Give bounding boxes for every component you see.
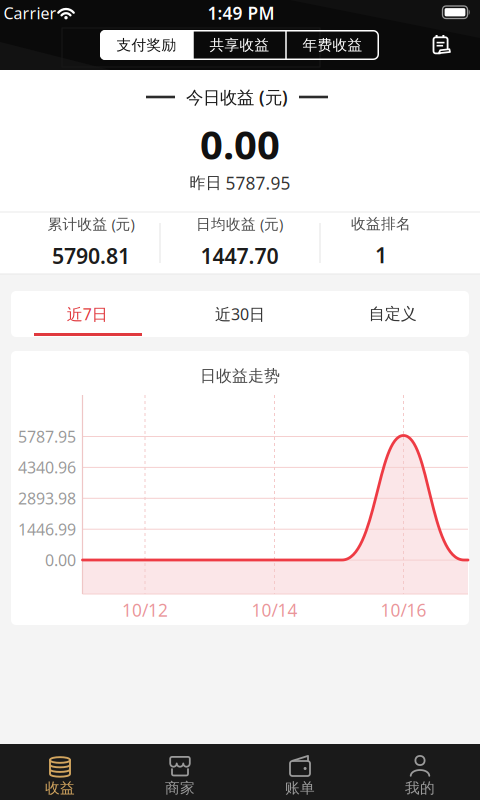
staticText: 收益排名	[351, 215, 411, 233]
button[interactable]: 我的	[360, 744, 480, 800]
staticText: Carrier	[3, 2, 56, 24]
staticText: 1446.99	[18, 519, 76, 540]
staticText: 10/12	[122, 598, 168, 621]
staticText: 1:49 PM	[207, 1, 274, 24]
staticText: 4340.96	[18, 457, 76, 478]
staticText: 10/14	[251, 598, 297, 621]
staticText: 收益	[45, 779, 75, 797]
staticText: 1	[375, 241, 387, 269]
staticText: 累计收益 (元)	[47, 214, 134, 234]
staticText: 2893.98	[18, 488, 76, 509]
button[interactable]: 近30日	[164, 291, 316, 337]
staticText: 5787.95	[18, 426, 76, 447]
staticText: 自定义	[369, 304, 417, 324]
staticText: 10/16	[380, 598, 426, 621]
staticText: 昨日	[189, 173, 221, 193]
button[interactable]: 自定义	[317, 291, 469, 337]
button[interactable]: 商家	[120, 744, 240, 800]
button[interactable]: 收益	[0, 744, 120, 800]
staticText: 日收益走势	[200, 366, 280, 386]
staticText: 支付奖励	[116, 36, 176, 54]
staticText: 近30日	[215, 303, 265, 325]
staticText: 0.00	[45, 549, 76, 571]
staticText: 日均收益 (元)	[196, 214, 283, 234]
staticText: 年费收益	[302, 36, 362, 54]
button[interactable]: 近7日	[11, 291, 163, 337]
staticText: 账单	[285, 779, 315, 797]
staticText: 0.00	[200, 117, 280, 170]
staticText: 今日收益 (元)	[186, 85, 288, 108]
staticText: 5787.95	[225, 171, 290, 194]
staticText: 我的	[405, 779, 435, 797]
staticText: 1447.70	[200, 242, 278, 270]
staticText: 共享收益	[209, 36, 269, 54]
staticText: 商家	[165, 779, 195, 797]
button[interactable]: 年费收益	[286, 30, 379, 60]
button[interactable]: 共享收益	[193, 30, 286, 60]
button[interactable]: 支付奖励	[100, 30, 193, 60]
staticText: 近7日	[67, 303, 108, 325]
button[interactable]: 账单明细	[423, 28, 459, 62]
staticText: 5790.81	[52, 242, 130, 270]
button[interactable]: 账单	[240, 744, 360, 800]
